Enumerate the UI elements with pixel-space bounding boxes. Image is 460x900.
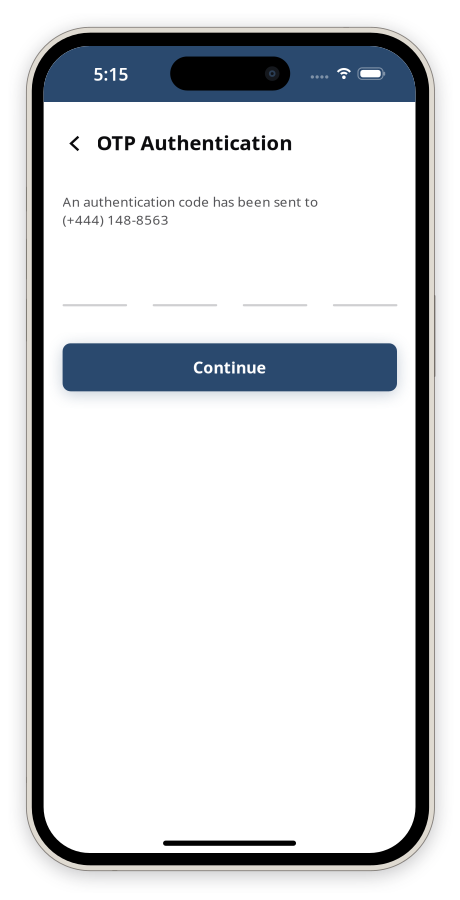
button[interactable]: Continue <box>63 343 397 391</box>
button[interactable]: Back <box>62 124 100 166</box>
staticText: Continue <box>193 357 266 378</box>
staticText: An authentication code has been sent to <box>63 193 318 210</box>
staticText: (+444) 148-8563 <box>63 211 169 228</box>
staticText: 5:15 <box>94 62 129 85</box>
staticText: OTP Authentication <box>97 129 293 156</box>
